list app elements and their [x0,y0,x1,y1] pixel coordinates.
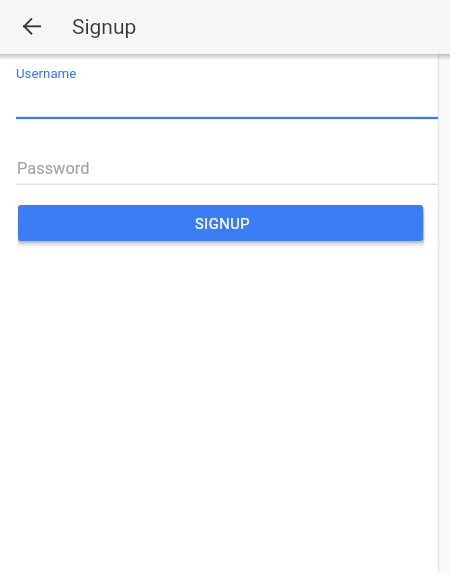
staticText: Signup [72,15,137,40]
staticText: Username [16,66,77,82]
staticText: SIGNUP [195,215,250,232]
button[interactable]: Back [8,8,44,44]
staticText: Password [17,159,90,178]
button[interactable]: Password field [0,150,438,186]
button[interactable]: SIGNUP [18,205,423,241]
button[interactable]: Username field [0,57,438,120]
